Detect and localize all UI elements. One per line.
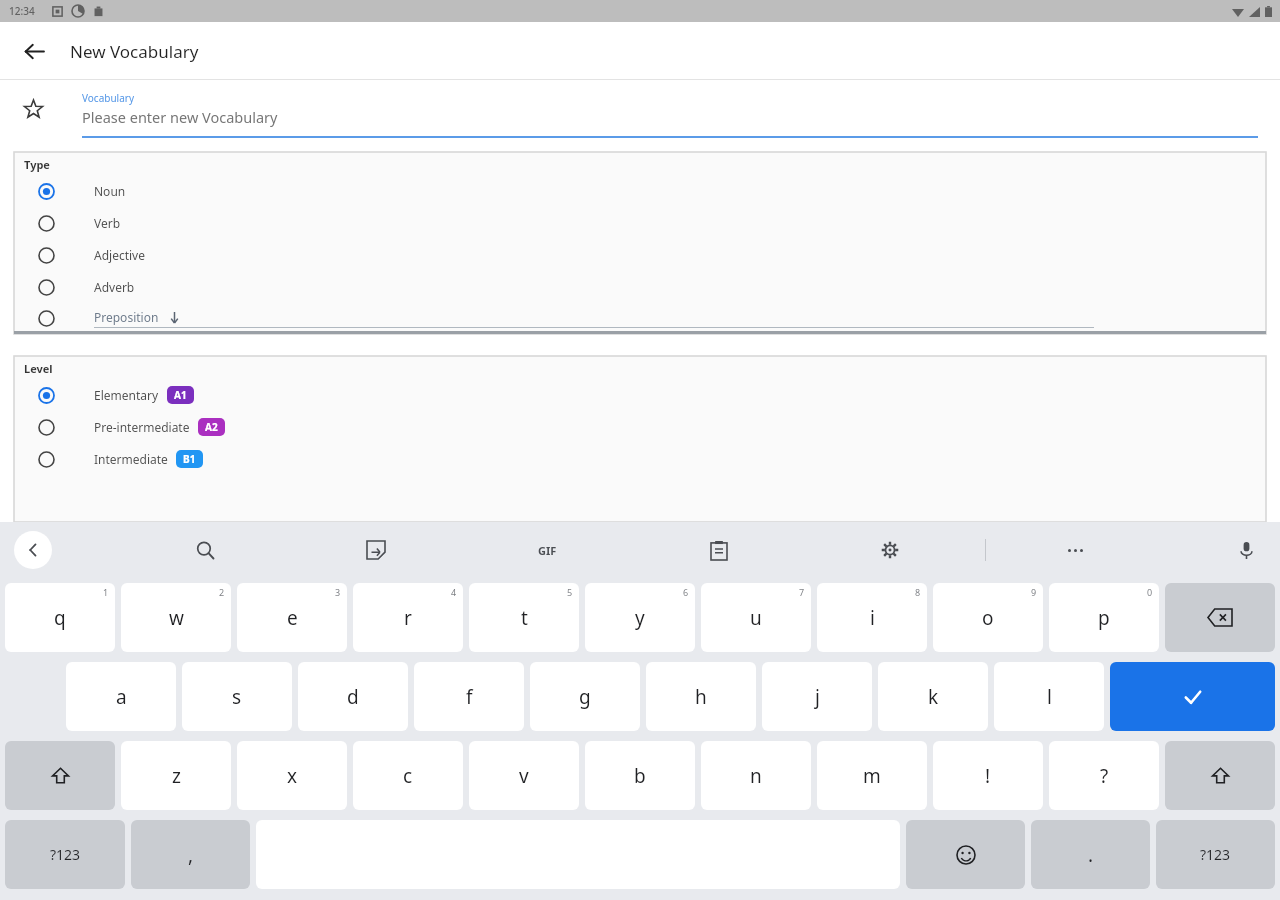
button[interactable]: a: [66, 662, 176, 731]
staticText: r: [404, 605, 412, 631]
staticText: Please enter new Vocabulary: [82, 107, 278, 127]
button[interactable]: Pre-intermediate: [24, 411, 1266, 443]
button[interactable]: h: [646, 662, 756, 731]
button[interactable]: Verb: [24, 207, 1266, 239]
staticText: .: [1088, 842, 1094, 868]
button[interactable]: b: [585, 741, 695, 810]
staticText: t: [521, 605, 528, 631]
button[interactable]: l: [994, 662, 1104, 731]
button[interactable]: k: [878, 662, 988, 731]
staticText: b: [634, 763, 646, 789]
button[interactable]: GIF: [527, 530, 567, 570]
staticText: 2: [219, 586, 225, 598]
staticText: w: [169, 605, 184, 631]
staticText: l: [1047, 684, 1052, 710]
staticText: GIF: [538, 543, 557, 558]
staticText: 0: [1147, 586, 1153, 598]
button[interactable]: ?123: [1156, 820, 1275, 889]
button[interactable]: Adverb: [24, 271, 1266, 303]
button[interactable]: !: [933, 741, 1043, 810]
button[interactable]: Clipboard: [699, 530, 739, 570]
button[interactable]: Shift: [5, 741, 115, 810]
button[interactable]: v: [469, 741, 579, 810]
staticText: q: [54, 605, 66, 631]
staticText: 5: [567, 586, 573, 598]
button[interactable]: g: [530, 662, 640, 731]
staticText: Adverb: [94, 279, 135, 295]
staticText: ?123: [1200, 845, 1231, 864]
button[interactable]: Search: [185, 530, 225, 570]
staticText: ,: [188, 842, 194, 868]
staticText: y: [635, 605, 645, 631]
staticText: A2: [205, 420, 218, 434]
button[interactable]: ?123: [5, 820, 125, 889]
button[interactable]: s: [182, 662, 292, 731]
button[interactable]: Favorite: [12, 88, 54, 130]
button[interactable]: x: [237, 741, 347, 810]
button[interactable]: Expand toolbar: [14, 531, 52, 569]
staticText: k: [928, 684, 939, 710]
staticText: 12:34: [9, 4, 35, 18]
button[interactable]: n: [701, 741, 811, 810]
button[interactable]: Settings: [870, 530, 910, 570]
staticText: u: [750, 605, 762, 631]
button[interactable]: Back: [12, 29, 56, 73]
button[interactable]: Shift: [1165, 741, 1275, 810]
button[interactable]: Adjective: [24, 239, 1266, 271]
button[interactable]: d: [298, 662, 408, 731]
button[interactable]: Enter: [1110, 662, 1275, 731]
button[interactable]: z: [121, 741, 231, 810]
staticText: Verb: [94, 215, 121, 231]
button[interactable]: .: [1031, 820, 1150, 889]
button[interactable]: j: [762, 662, 872, 731]
button[interactable]: f: [414, 662, 524, 731]
button[interactable]: w: [121, 583, 231, 652]
button[interactable]: y: [585, 583, 695, 652]
button[interactable]: Backspace: [1165, 583, 1275, 652]
button[interactable]: Emoji: [906, 820, 1025, 889]
staticText: 3: [335, 586, 341, 598]
button[interactable]: r: [353, 583, 463, 652]
staticText: 6: [683, 586, 689, 598]
button[interactable]: Stickers: [356, 530, 396, 570]
staticText: e: [287, 605, 298, 631]
button[interactable]: ?: [1049, 741, 1159, 810]
button[interactable]: o: [933, 583, 1043, 652]
staticText: B1: [183, 452, 196, 466]
staticText: New Vocabulary: [70, 40, 199, 63]
staticText: Level: [24, 361, 53, 376]
staticText: n: [750, 763, 762, 789]
staticText: z: [172, 763, 181, 789]
staticText: Adjective: [94, 247, 145, 263]
button[interactable]: p: [1049, 583, 1159, 652]
button[interactable]: Preposition: [24, 303, 1266, 334]
button[interactable]: ,: [131, 820, 250, 889]
button[interactable]: Intermediate: [24, 443, 1266, 475]
staticText: Noun: [94, 183, 126, 199]
staticText: g: [579, 684, 591, 710]
button[interactable]: More options: [1055, 530, 1095, 570]
staticText: 9: [1031, 586, 1037, 598]
staticText: j: [815, 684, 820, 710]
staticText: Intermediate: [94, 451, 168, 467]
staticText: v: [519, 763, 529, 789]
button[interactable]: Noun: [24, 175, 1266, 207]
button[interactable]: c: [353, 741, 463, 810]
staticText: 1: [103, 586, 109, 598]
button[interactable]: Voice input: [1226, 530, 1266, 570]
button[interactable]: q: [5, 583, 115, 652]
staticText: A1: [174, 388, 187, 402]
staticText: Type: [24, 157, 50, 172]
staticText: Elementary: [94, 387, 159, 403]
staticText: i: [870, 605, 875, 631]
button[interactable]: i: [817, 583, 927, 652]
button[interactable]: e: [237, 583, 347, 652]
staticText: !: [985, 763, 991, 789]
staticText: o: [982, 605, 994, 631]
button[interactable]: t: [469, 583, 579, 652]
button[interactable]: Elementary: [24, 379, 1266, 411]
staticText: c: [403, 763, 413, 789]
button[interactable]: u: [701, 583, 811, 652]
button[interactable]: m: [817, 741, 927, 810]
